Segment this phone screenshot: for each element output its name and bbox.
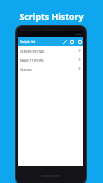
button[interactable]: Edit	[61, 37, 68, 46]
staticText: Scripts list	[20, 40, 36, 44]
button[interactable]: More options	[76, 37, 83, 46]
button[interactable]: SERVER RESTAR	[18, 46, 83, 55]
staticText: Scripts History	[19, 11, 84, 23]
staticText: SERVER RESTAR	[20, 49, 45, 53]
staticText: MAKE IT WORK	[20, 58, 44, 62]
staticText: Session	[20, 67, 32, 71]
button[interactable]: Session	[18, 64, 83, 73]
button[interactable]: MAKE IT WORK	[18, 55, 83, 64]
button[interactable]: Settings	[68, 37, 76, 46]
